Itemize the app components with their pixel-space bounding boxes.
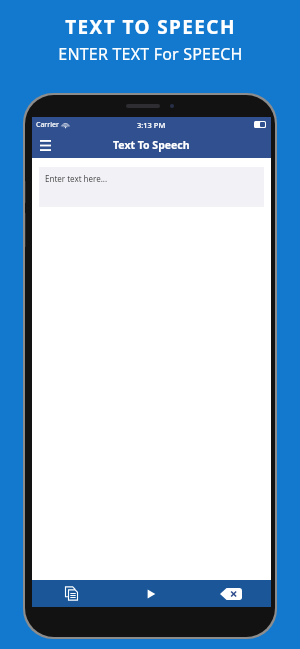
button[interactable]: Enter text here... [39, 167, 264, 207]
button[interactable]: Clear text [191, 580, 271, 607]
staticText: ENTER TEXT For SPEECH [58, 43, 243, 65]
staticText: Enter text here... [45, 173, 108, 184]
staticText: Carrier [36, 120, 59, 130]
button[interactable]: Play speech [111, 580, 191, 607]
staticText: TEXT TO SPEECH [65, 14, 236, 40]
button[interactable]: Menu [32, 132, 58, 158]
staticText: Text To Speech [113, 138, 190, 152]
staticText: 3:13 PM [137, 120, 166, 130]
button[interactable]: Copy text [32, 580, 111, 607]
